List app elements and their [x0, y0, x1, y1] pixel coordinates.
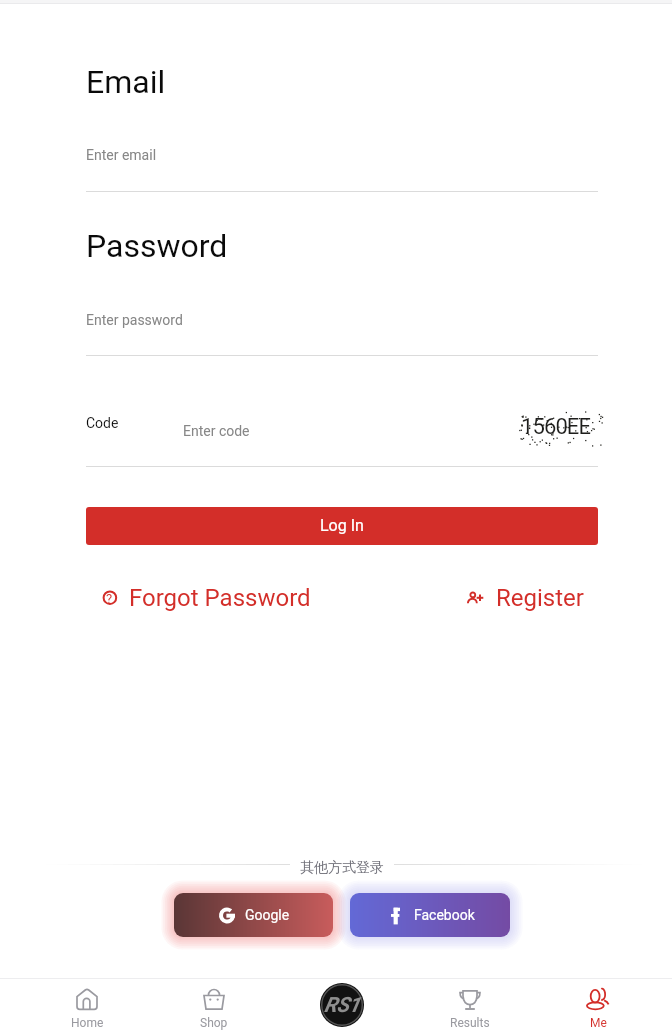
staticText: Home: [71, 1016, 104, 1030]
button[interactable]: Refresh verification code: [517, 407, 601, 447]
button[interactable]: ?: [96, 580, 318, 614]
button[interactable]: Home: [23, 979, 151, 1031]
staticText: Forgot Password: [129, 584, 311, 612]
button[interactable]: RS1 Home: [320, 983, 364, 1027]
button[interactable]: Register: [460, 580, 592, 614]
button[interactable]: Shop: [150, 979, 278, 1031]
button[interactable]: Results: [406, 979, 534, 1031]
button[interactable]: Me: [534, 979, 662, 1031]
button[interactable]: Log In: [86, 507, 598, 545]
staticText: Email: [86, 63, 166, 101]
button[interactable]: Facebook: [350, 893, 510, 937]
staticText: ?: [106, 591, 113, 606]
staticText: Enter password: [86, 312, 183, 328]
staticText: Results: [450, 1016, 490, 1030]
button[interactable]: Google: [174, 893, 333, 937]
staticText: Enter code: [183, 423, 250, 439]
staticText: Password: [86, 227, 228, 265]
staticText: Facebook: [414, 907, 475, 923]
staticText: Register: [496, 584, 584, 612]
staticText: Code: [86, 415, 119, 431]
staticText: Enter email: [86, 147, 157, 163]
staticText: 1560EE: [521, 414, 591, 440]
staticText: Google: [245, 907, 290, 923]
staticText: 其他方式登录: [300, 859, 384, 877]
staticText: Me: [590, 1016, 607, 1030]
staticText: Shop: [200, 1016, 228, 1030]
staticText: Log In: [320, 516, 364, 535]
staticText: RS1: [324, 993, 360, 1018]
